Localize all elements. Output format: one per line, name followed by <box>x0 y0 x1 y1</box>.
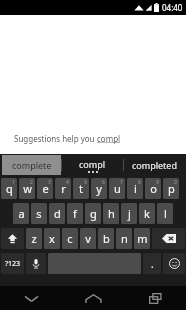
staticText: x <box>49 231 55 246</box>
staticText: 6 <box>102 179 105 186</box>
staticText: completed <box>132 159 177 171</box>
staticText: t <box>79 181 83 196</box>
button[interactable]: i <box>127 178 143 199</box>
button[interactable]: c <box>62 228 78 249</box>
staticText: y <box>96 181 102 196</box>
button[interactable]: u <box>109 178 125 199</box>
staticText: 8 <box>138 179 141 186</box>
staticText: 7 <box>120 179 123 186</box>
button[interactable]: w <box>19 178 35 199</box>
staticText: r <box>61 181 66 196</box>
button[interactable]: q <box>1 178 17 199</box>
button[interactable]: Emoji <box>163 253 185 274</box>
button[interactable]: a <box>13 203 29 224</box>
button[interactable]: Backspace <box>152 228 185 249</box>
staticText: o <box>150 181 157 196</box>
staticText: 2 <box>30 179 33 186</box>
staticText: q <box>6 181 13 196</box>
button[interactable]: j <box>121 203 137 224</box>
button[interactable]: l <box>157 203 173 224</box>
button[interactable]: n <box>116 228 132 249</box>
staticText: j <box>128 206 131 221</box>
button[interactable]: completed <box>124 154 185 176</box>
button[interactable]: h <box>103 203 119 224</box>
staticText: i <box>134 181 137 196</box>
button[interactable]: r <box>55 178 71 199</box>
staticText: k <box>144 206 150 221</box>
staticText: d <box>54 206 61 221</box>
staticText: w <box>23 181 32 196</box>
button[interactable]: p <box>163 178 179 199</box>
staticText: l <box>164 206 167 221</box>
staticText: compl <box>79 158 106 170</box>
button[interactable]: complete <box>2 155 61 175</box>
staticText: . <box>151 257 154 271</box>
button[interactable]: v <box>80 228 96 249</box>
button[interactable]: g <box>85 203 101 224</box>
staticText: p <box>168 181 175 196</box>
button[interactable]: e <box>37 178 53 199</box>
staticText: ?123 <box>5 259 21 269</box>
button[interactable]: Recent apps <box>124 286 186 310</box>
staticText: Suggestions help you <box>14 133 97 144</box>
staticText: n <box>121 231 128 246</box>
staticText: u <box>114 181 121 196</box>
staticText: c <box>67 231 73 246</box>
button[interactable]: x <box>44 228 60 249</box>
button[interactable]: z <box>26 228 42 249</box>
staticText: v <box>85 231 91 246</box>
staticText: 5 <box>84 179 87 186</box>
staticText: 9 <box>156 179 159 186</box>
staticText: s <box>36 206 42 221</box>
button[interactable]: Voice input <box>26 253 46 274</box>
button[interactable]: ?123 <box>1 253 24 274</box>
button[interactable]: o <box>145 178 161 199</box>
staticText: b <box>103 231 110 246</box>
button[interactable]: k <box>139 203 155 224</box>
button[interactable]: compl <box>62 154 123 176</box>
staticText: 1 <box>12 179 15 186</box>
button[interactable]: y <box>91 178 107 199</box>
staticText: h <box>108 206 115 221</box>
staticText: 4 <box>66 179 69 186</box>
button[interactable]: f <box>67 203 83 224</box>
button[interactable]: Hide keyboard <box>0 286 62 310</box>
button[interactable]: . <box>143 253 161 274</box>
staticText: g <box>90 206 97 221</box>
button[interactable]: b <box>98 228 114 249</box>
button[interactable]: s <box>31 203 47 224</box>
staticText: a <box>18 206 25 221</box>
button[interactable]: Shift <box>1 228 24 249</box>
button[interactable]: Home <box>62 286 124 310</box>
button[interactable]: d <box>49 203 65 224</box>
staticText: e <box>42 181 49 196</box>
staticText: 0 <box>174 179 177 186</box>
staticText: 04:40 <box>162 2 183 13</box>
staticText: complete <box>12 159 52 171</box>
staticText: 3 <box>48 179 51 186</box>
button[interactable]: m <box>134 228 150 249</box>
staticText: compl <box>97 133 121 144</box>
staticText: z <box>31 231 37 246</box>
button[interactable]: t <box>73 178 89 199</box>
staticText: f <box>73 206 77 221</box>
staticText: m <box>137 231 148 246</box>
